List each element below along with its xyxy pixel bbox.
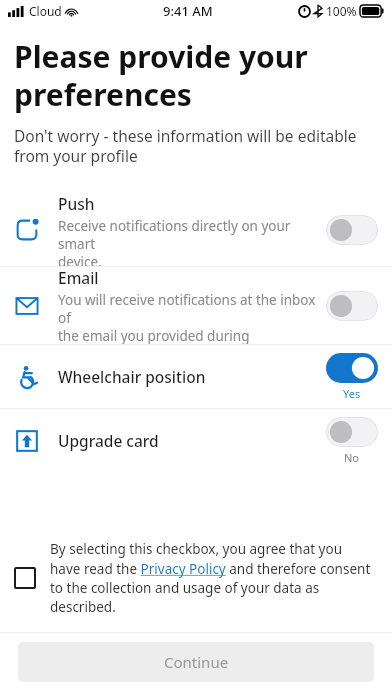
other: Wheelchair position [15,365,39,389]
staticText: Yes [343,386,361,401]
staticText: 100% [326,3,357,19]
button[interactable]: Upgrade card [0,409,392,472]
button[interactable]: Wheelchair position [0,345,392,408]
staticText: Wheelchair position [58,366,206,387]
staticText: Cloud [29,3,62,19]
staticText: Email [58,267,99,288]
other: Push [15,218,39,242]
button[interactable]: Continue [18,642,374,682]
button[interactable]: Push [0,193,392,266]
button[interactable]: Off [326,417,378,447]
other: Email [15,294,39,318]
other: Agree to privacy policy [14,567,36,589]
button[interactable]: On [326,353,378,383]
staticText: Push [58,193,95,214]
staticText: 9:41 AM [163,2,213,20]
button[interactable]: Agree to privacy policy [0,534,392,622]
staticText: Don't worry - these information will be … [14,125,357,167]
staticText: Continue [164,652,229,672]
staticText: You will receive notifications at the in… [58,291,316,344]
button[interactable]: Off [326,291,378,321]
staticText: Receive notifications directly on your s… [58,217,316,266]
staticText: Please provide your preferences [14,36,308,115]
button[interactable]: Email [0,267,392,344]
button[interactable]: Off [326,215,378,245]
staticText: Upgrade card [58,430,159,451]
staticText: No [344,450,360,465]
other: Upgrade card [15,429,39,453]
staticText: By selecting this checkbox, you agree th… [50,540,374,616]
